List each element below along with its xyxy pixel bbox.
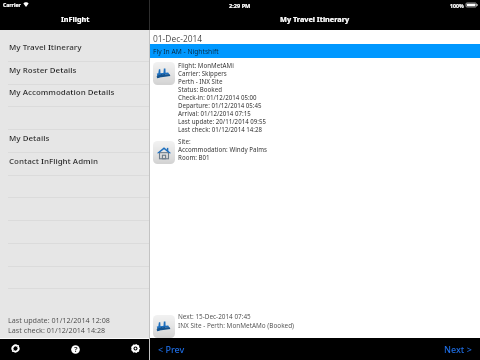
button[interactable]: [150, 58, 480, 90]
staticText: < Prev: [158, 343, 185, 355]
staticText: Last update: 20/11/2014 09:55: [178, 117, 266, 125]
staticText: InFlight: [61, 14, 90, 24]
staticText: Carrier: Skippers: [178, 69, 227, 77]
staticText: Last update: 01/12/2014 12:08: [8, 315, 110, 325]
staticText: Last check: 01/12/2014 14:28: [8, 325, 106, 335]
staticText: Status: Booked: [178, 85, 222, 93]
button[interactable]: My Accommodation Details: [0, 84, 150, 107]
button[interactable]: [0, 198, 150, 221]
staticText: Carrier: [3, 2, 21, 9]
button[interactable]: [0, 107, 150, 130]
staticText: My Travel Itinerary: [280, 14, 350, 24]
button[interactable]: Contact InFlight Admin: [0, 153, 150, 176]
staticText: My Travel Itinerary: [9, 42, 82, 53]
button[interactable]: Next >: [436, 339, 480, 359]
staticText: 01-Dec-2014: [153, 33, 203, 44]
staticText: 100%: [450, 2, 464, 9]
button[interactable]: [0, 244, 150, 267]
button[interactable]: < Prev: [150, 339, 193, 359]
staticText: Perth - INX Site: [178, 77, 223, 85]
staticText: Contact InFlight Admin: [9, 156, 98, 167]
staticText: Accommodation: Windy Palms: [178, 145, 268, 153]
staticText: My Roster Details: [9, 65, 77, 76]
button[interactable]: My Details: [0, 130, 150, 153]
staticText: Site:: [178, 137, 191, 145]
staticText: My Accommodation Details: [9, 87, 115, 98]
button[interactable]: Settings: [122, 339, 148, 360]
button[interactable]: Refresh: [2, 339, 28, 360]
staticText: Last check: 01/12/2014 14:28: [178, 125, 262, 133]
staticText: 2:29 PM: [229, 2, 251, 10]
staticText: Check-in: 01/12/2014 05:00: [178, 93, 257, 101]
button[interactable]: [0, 266, 150, 289]
staticText: Flight: MonMetAMi: [178, 61, 234, 69]
button[interactable]: My Roster Details: [0, 62, 150, 85]
staticText: Next: 15-Dec-2014 07:45: [178, 312, 251, 321]
staticText: My Details: [9, 133, 50, 144]
button[interactable]: Fly In AM - Nightshift: [150, 44, 480, 58]
staticText: Next >: [444, 343, 472, 355]
button[interactable]: Help: [62, 339, 88, 360]
staticText: INX Site - Perth: MonMetAMo (Booked): [178, 321, 295, 330]
staticText: Arrival: 01/12/2014 07:15: [178, 109, 251, 117]
button[interactable]: My Travel Itinerary: [0, 39, 150, 62]
button[interactable]: [0, 221, 150, 244]
button[interactable]: [0, 175, 150, 198]
staticText: Room: B01: [178, 153, 210, 161]
staticText: Fly In AM - Nightshift: [153, 47, 219, 56]
staticText: Departure: 01/12/2014 05:45: [178, 101, 262, 109]
staticText: ?: [74, 344, 78, 354]
